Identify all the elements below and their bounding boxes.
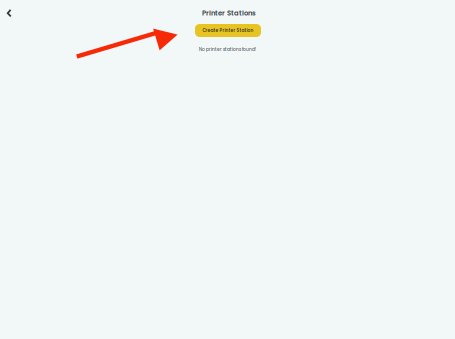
button[interactable]: Back <box>0 0 22 26</box>
staticText: Create Printer Station <box>202 27 253 34</box>
staticText: No printer stations found! <box>199 47 256 53</box>
button[interactable]: Create Printer Station <box>195 24 261 37</box>
staticText: Printer Stations <box>202 8 256 18</box>
